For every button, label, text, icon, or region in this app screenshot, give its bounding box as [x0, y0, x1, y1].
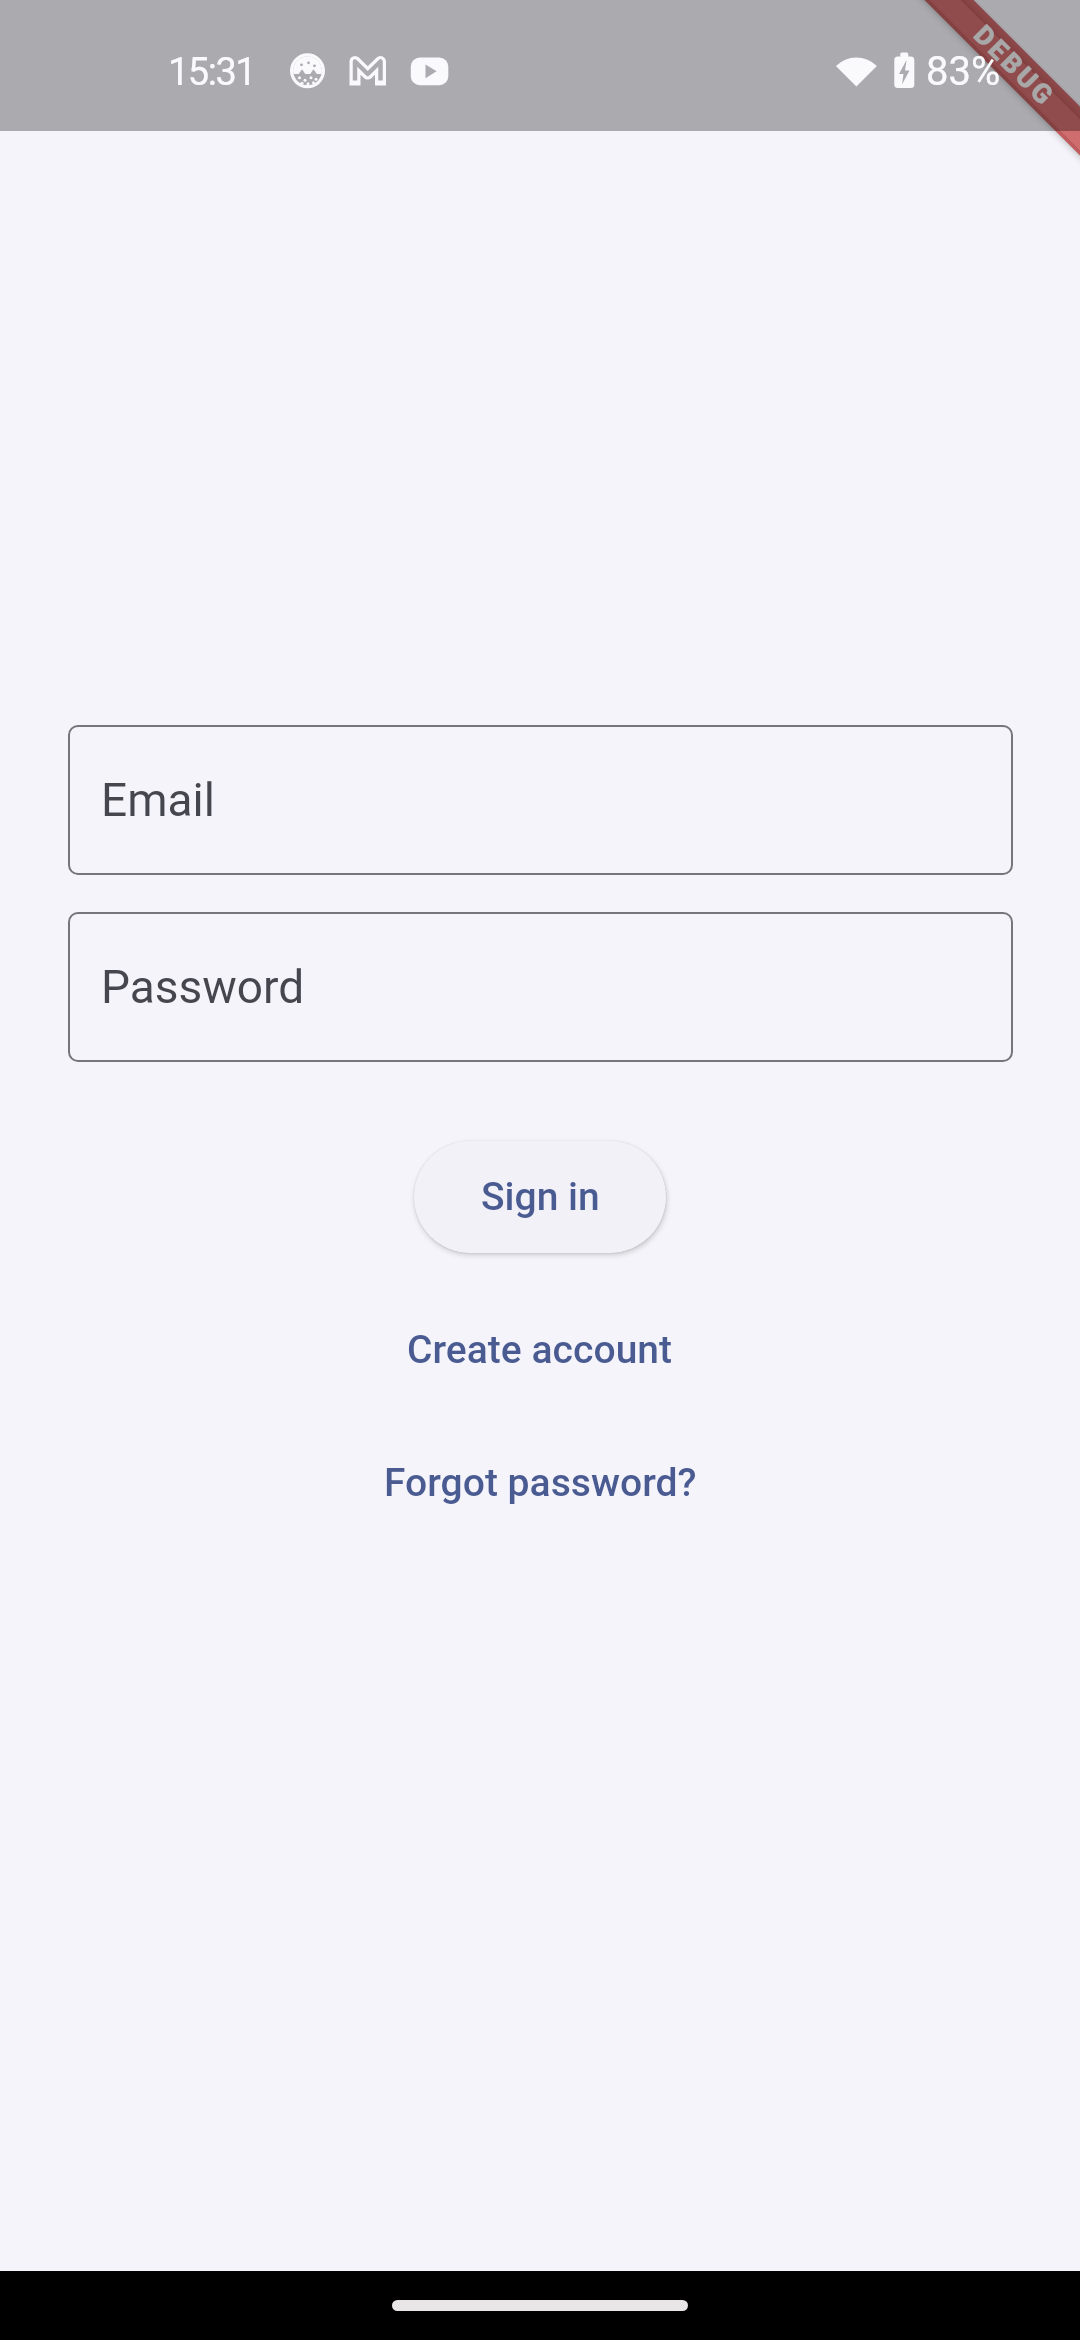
- staticText: 83%: [926, 48, 1001, 95]
- staticText: DEBUG: [967, 19, 1062, 114]
- staticText: Password: [101, 960, 305, 1014]
- button[interactable]: Email: [68, 725, 1013, 875]
- staticText: Email: [101, 773, 215, 827]
- staticText: Sign in: [481, 1174, 600, 1220]
- button[interactable]: Forgot password?: [0, 1443, 1080, 1523]
- button[interactable]: Sign in: [414, 1141, 666, 1253]
- button[interactable]: Password: [68, 912, 1013, 1062]
- staticText: Create account: [407, 1327, 673, 1373]
- staticText: 15:31: [168, 50, 256, 95]
- button[interactable]: Create account: [0, 1310, 1080, 1390]
- staticText: Forgot password?: [384, 1460, 697, 1506]
